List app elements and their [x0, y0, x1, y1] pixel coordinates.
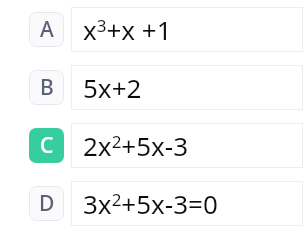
staticText: C	[40, 131, 54, 160]
staticText: 3x2+5x-3=0	[83, 186, 218, 221]
button[interactable]: B	[29, 70, 64, 105]
button[interactable]: C	[29, 128, 64, 163]
button[interactable]: D	[0, 174, 303, 232]
button[interactable]: C	[0, 116, 303, 174]
button[interactable]: 2x2+5x-3	[71, 123, 303, 168]
button[interactable]: 3x2+5x-3=0	[71, 181, 303, 226]
button[interactable]: A	[0, 0, 303, 58]
staticText: A	[40, 15, 54, 44]
button[interactable]: A	[29, 12, 64, 47]
staticText: D	[39, 189, 55, 218]
button[interactable]: D	[29, 186, 64, 221]
button[interactable]: 5x+2	[71, 65, 303, 110]
staticText: B	[40, 73, 54, 102]
staticText: 2x2+5x-3	[83, 128, 189, 163]
staticText: 5x+2	[83, 70, 142, 105]
button[interactable]: B	[0, 58, 303, 116]
staticText: x3+x +1	[83, 12, 172, 47]
button[interactable]: x3+x +1	[71, 7, 303, 52]
